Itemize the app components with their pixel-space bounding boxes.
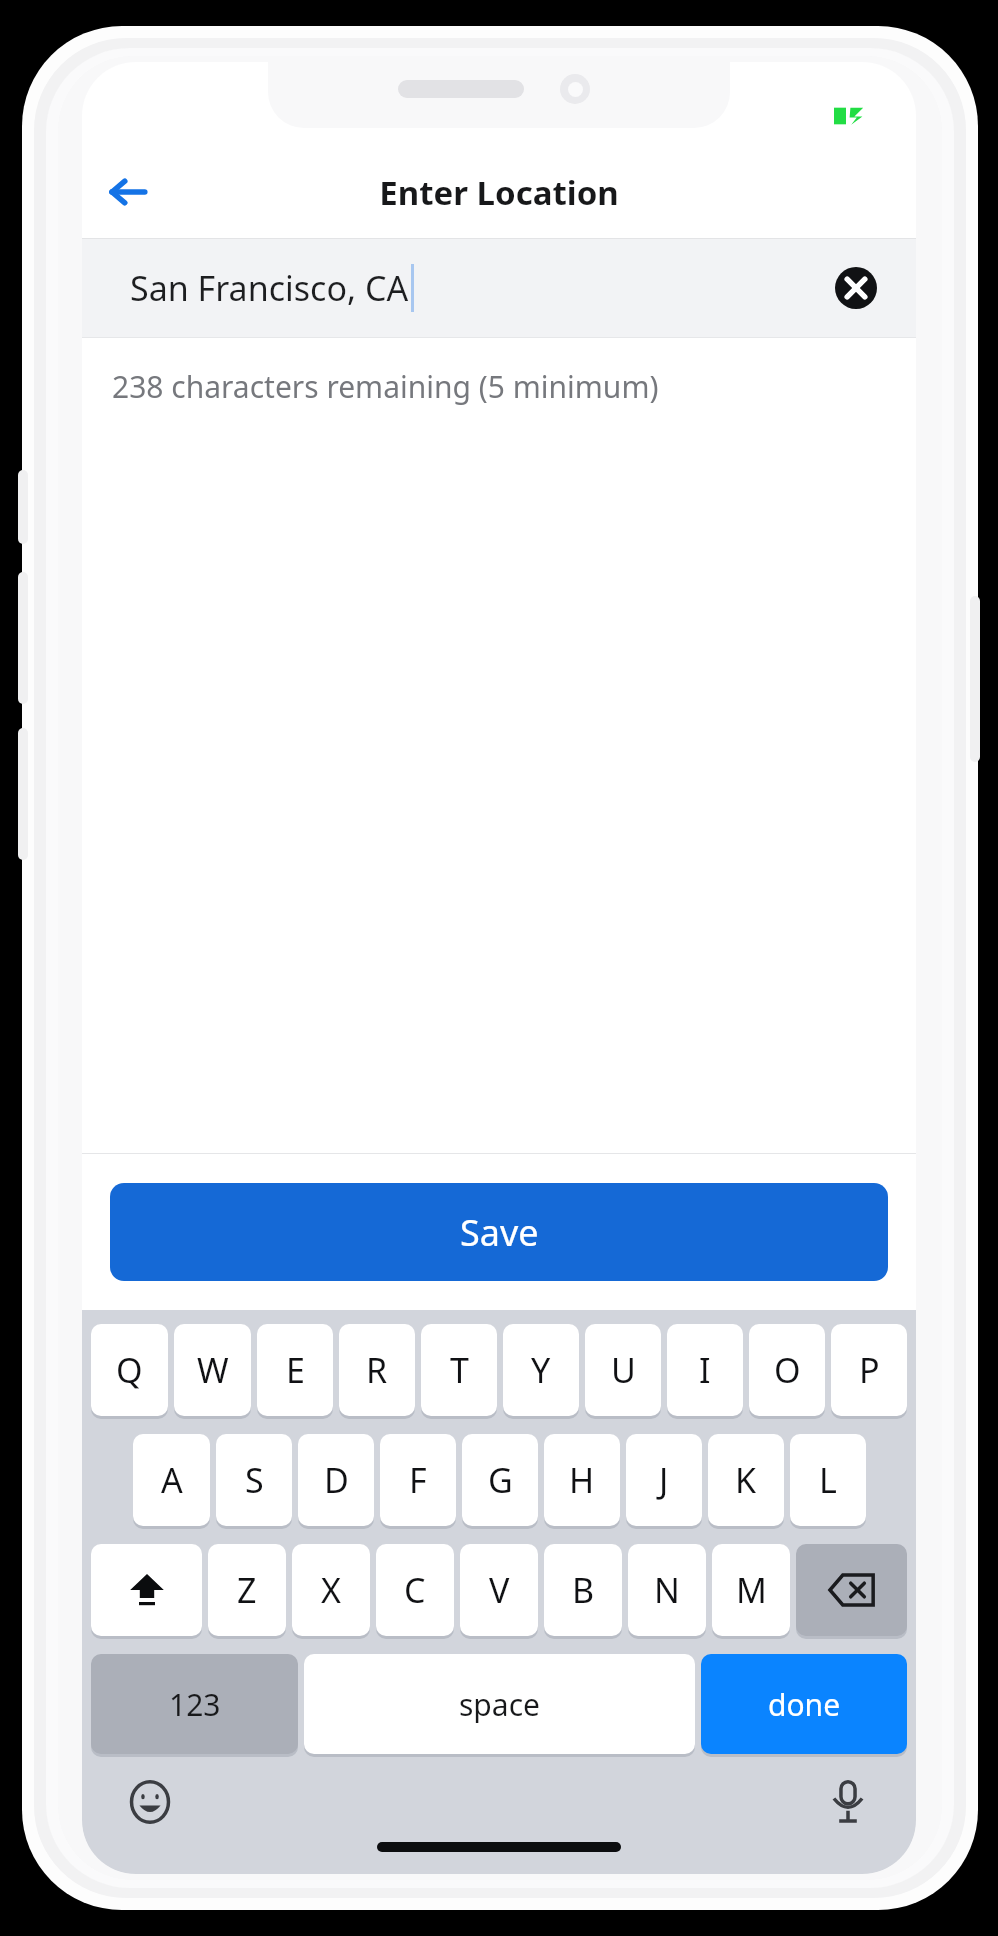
staticText: N [654,1567,680,1613]
staticText: done [768,1684,841,1725]
button[interactable]: X [292,1544,370,1636]
button[interactable]: J [626,1434,702,1526]
staticText: M [736,1567,767,1613]
button[interactable]: Dictation [816,1770,880,1834]
button[interactable]: Shift [91,1544,202,1636]
staticText: Y [531,1347,551,1393]
staticText: S [245,1457,264,1503]
button[interactable]: M [712,1544,790,1636]
button[interactable]: C [376,1544,454,1636]
staticText: Z [237,1567,257,1613]
staticText: O [774,1347,801,1393]
staticText: E [286,1347,305,1393]
staticText: W [197,1347,229,1393]
button[interactable]: N [628,1544,706,1636]
button[interactable]: Q [91,1324,168,1416]
button[interactable]: R [339,1324,415,1416]
button[interactable]: Save [110,1183,888,1281]
staticText: C [404,1567,426,1613]
staticText: R [366,1347,388,1393]
staticText: I [699,1347,711,1393]
button[interactable]: W [174,1324,251,1416]
button[interactable]: S [216,1434,292,1526]
staticText: 123 [169,1684,221,1725]
button[interactable]: 123 [91,1654,298,1754]
button[interactable]: B [544,1544,622,1636]
button[interactable]: G [462,1434,538,1526]
button[interactable]: U [585,1324,661,1416]
button[interactable]: Clear text [826,258,886,318]
button[interactable]: Z [208,1544,286,1636]
staticText: G [488,1457,513,1503]
button[interactable]: V [460,1544,538,1636]
staticText: Enter Location [379,170,619,215]
button[interactable]: E [257,1324,333,1416]
button[interactable]: L [790,1434,866,1526]
staticText: P [859,1347,880,1393]
staticText: V [489,1567,510,1613]
staticText: X [321,1567,341,1613]
button[interactable]: Emoji [118,1770,182,1834]
staticText: A [161,1457,183,1503]
button[interactable]: K [708,1434,784,1526]
button[interactable]: I [667,1324,743,1416]
button[interactable]: H [544,1434,620,1526]
staticText: Save [460,1208,539,1257]
staticText: Q [116,1347,143,1393]
button[interactable]: T [421,1324,497,1416]
button[interactable]: Y [503,1324,579,1416]
button[interactable]: done [701,1654,907,1754]
staticText: F [409,1457,427,1503]
staticText: 238 characters remaining (5 minimum) [112,366,659,407]
button[interactable]: Delete [796,1544,907,1636]
staticText: H [569,1457,595,1503]
staticText: L [819,1457,837,1503]
staticText: space [459,1684,540,1725]
button[interactable]: Back [96,160,160,224]
button[interactable]: San Francisco, CA [82,239,916,337]
button[interactable]: F [380,1434,456,1526]
other: Delete [796,1544,907,1636]
button[interactable]: P [831,1324,907,1416]
staticText: U [611,1347,636,1393]
staticText: D [324,1457,349,1503]
button[interactable]: space [304,1654,695,1754]
staticText: T [450,1347,469,1393]
button[interactable]: O [749,1324,825,1416]
staticText: San Francisco, CA [130,265,409,311]
staticText: J [659,1457,669,1503]
staticText: B [572,1567,595,1613]
button[interactable]: D [298,1434,374,1526]
button[interactable]: A [133,1434,210,1526]
staticText: K [735,1457,757,1503]
other: Shift [91,1544,202,1636]
